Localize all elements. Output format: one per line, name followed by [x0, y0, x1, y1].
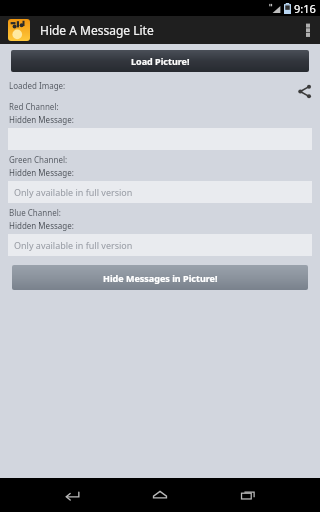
staticText: Red Channel:: [9, 101, 59, 112]
staticText: Hidden Message:: [9, 167, 74, 178]
button[interactable]: Recent apps: [226, 478, 270, 512]
button[interactable]: Back: [50, 478, 94, 512]
staticText: Hide A Message Lite: [40, 22, 154, 38]
staticText: Hide Messages in Picture!: [103, 272, 218, 284]
staticText: Blue Channel:: [9, 207, 61, 218]
button[interactable]: Load Picture!: [11, 50, 309, 72]
button[interactable]: Home: [138, 478, 182, 512]
button[interactable]: [8, 19, 30, 41]
button[interactable]: Share: [294, 82, 314, 101]
button[interactable]: Only available in full version: [8, 181, 312, 203]
staticText: Only available in full version: [14, 239, 133, 251]
staticText: Green Channel:: [9, 154, 68, 165]
staticText: Hidden Message:: [9, 114, 74, 125]
staticText: 9:16: [294, 1, 316, 16]
button[interactable]: Hide Messages in Picture!: [12, 265, 308, 290]
button[interactable]: Only available in full version: [8, 234, 312, 256]
staticText: Only available in full version: [14, 186, 133, 198]
button[interactable]: More options: [296, 16, 320, 44]
staticText: Load Picture!: [131, 55, 190, 67]
staticText: Loaded Image:: [9, 80, 66, 91]
staticText: Hidden Message:: [9, 220, 74, 231]
